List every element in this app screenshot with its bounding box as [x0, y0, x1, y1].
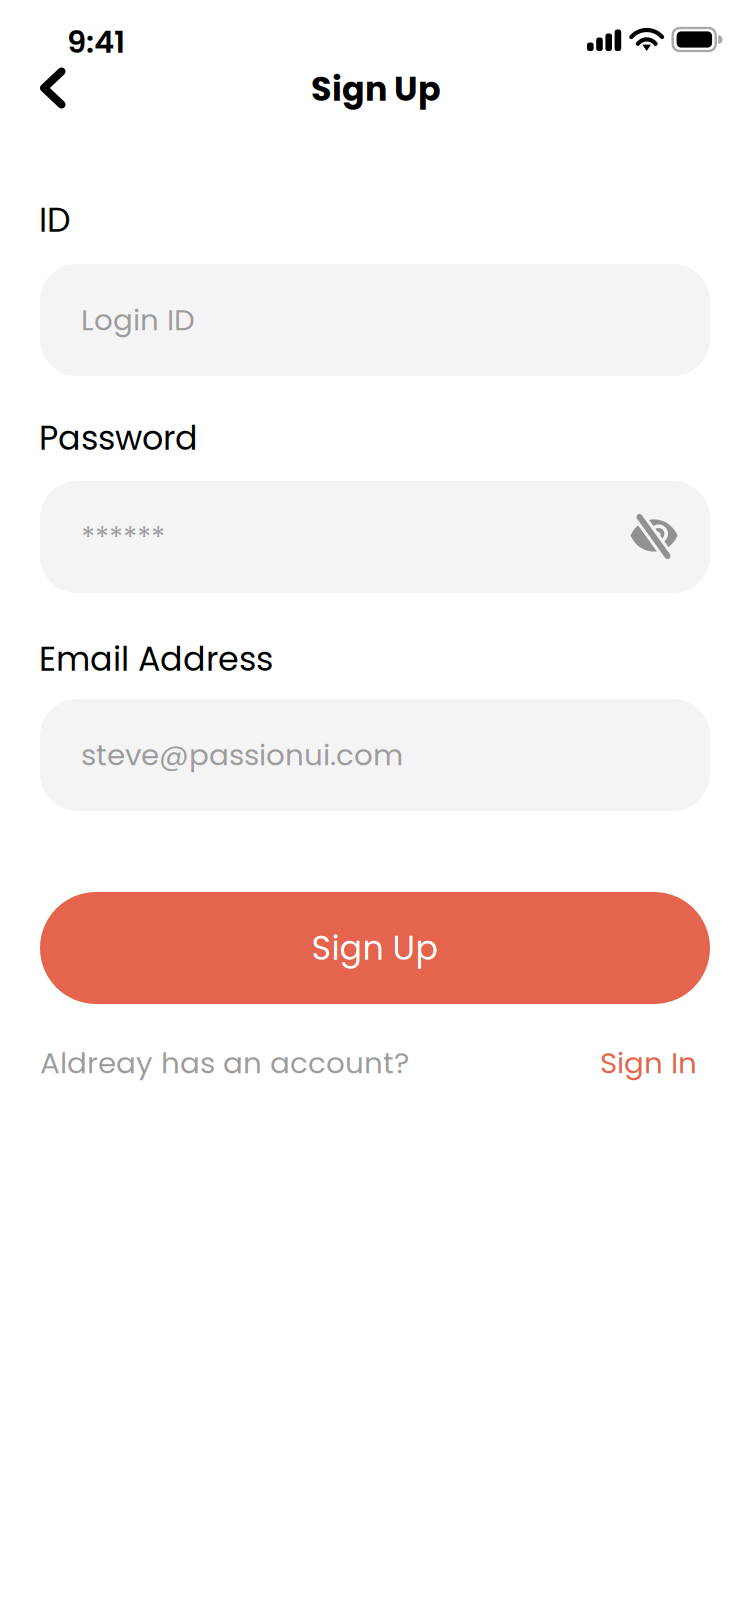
button[interactable]: Sign In: [600, 1042, 697, 1084]
button[interactable]: Sign Up: [40, 892, 710, 1004]
staticText: Sign Up: [311, 925, 438, 971]
button[interactable]: Login ID: [40, 264, 710, 376]
button[interactable]: ******: [40, 481, 710, 593]
staticText: Password: [39, 415, 198, 461]
staticText: Login ID: [81, 299, 195, 341]
staticText: ID: [39, 197, 71, 243]
staticText: Sign In: [600, 1042, 697, 1084]
staticText: Aldreay has an account?: [40, 1042, 409, 1084]
staticText: 9:41: [67, 20, 125, 63]
staticText: ******: [81, 516, 165, 558]
staticText: Sign Up: [311, 66, 441, 112]
button[interactable]: Show password: [630, 512, 682, 562]
staticText: steve@passionui.com: [81, 734, 403, 776]
staticText: Email Address: [39, 636, 273, 682]
button[interactable]: Back: [10, 52, 96, 124]
button[interactable]: steve@passionui.com: [40, 699, 710, 811]
